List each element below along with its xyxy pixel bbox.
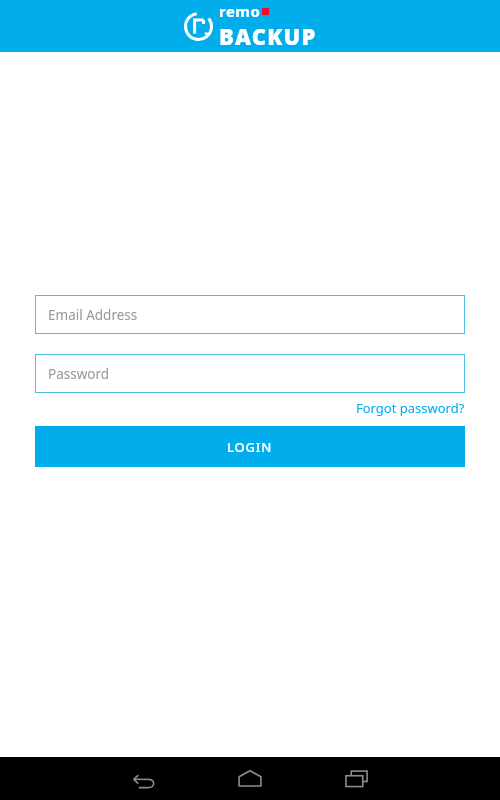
button[interactable]: Email Address [35,295,465,334]
staticText: Forgot password? [356,399,465,417]
button[interactable]: Back [112,757,174,800]
staticText: Email Address [48,306,138,324]
button[interactable]: Home [219,757,281,800]
button[interactable]: Password [35,354,465,393]
staticText: BACKUP [219,21,317,51]
button[interactable]: Recents [326,757,388,800]
button[interactable]: LOGIN [35,426,465,467]
staticText: Password [48,365,110,383]
staticText: remo [219,1,261,21]
staticText: LOGIN [227,438,273,456]
button[interactable]: Forgot password? [356,399,465,417]
